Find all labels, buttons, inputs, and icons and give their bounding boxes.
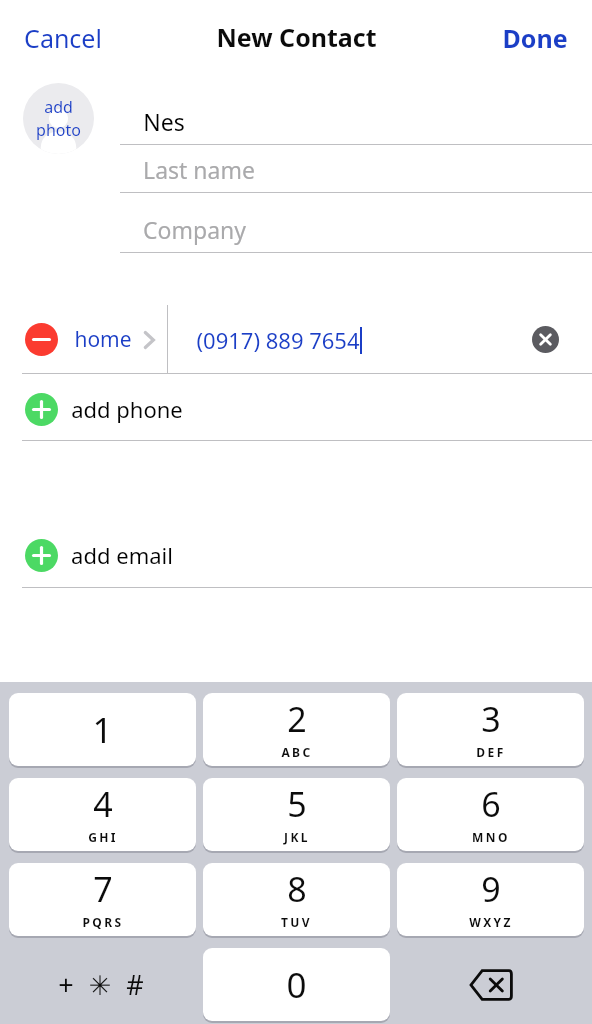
button[interactable]: 6 bbox=[397, 778, 584, 851]
staticText: Last name bbox=[143, 154, 255, 185]
button[interactable]: 9 bbox=[397, 863, 584, 936]
button[interactable]: add phone bbox=[25, 393, 58, 426]
button[interactable]: 0 bbox=[203, 948, 390, 1021]
button[interactable]: add photo bbox=[23, 83, 94, 154]
button[interactable]: add email bbox=[25, 539, 58, 572]
staticText: New Contact bbox=[216, 20, 377, 54]
button[interactable]: 5 bbox=[203, 778, 390, 851]
button[interactable]: Cancel bbox=[12, 13, 114, 63]
button[interactable]: Nes bbox=[120, 97, 592, 145]
button[interactable]: Last name bbox=[120, 145, 592, 193]
staticText: MNO bbox=[472, 829, 510, 845]
staticText: add email bbox=[71, 540, 173, 570]
button[interactable]: 8 bbox=[203, 863, 390, 936]
staticText: 2 bbox=[287, 696, 307, 742]
button[interactable]: plus star hash bbox=[9, 948, 196, 1021]
staticText: 8 bbox=[287, 866, 307, 912]
staticText: 4 bbox=[93, 781, 113, 827]
staticText: Cancel bbox=[24, 21, 102, 55]
staticText: Done bbox=[502, 21, 568, 55]
staticText: + ✳ # bbox=[58, 966, 148, 1003]
staticText: ABC bbox=[281, 744, 313, 760]
staticText: 6 bbox=[481, 781, 501, 827]
staticText: GHI bbox=[88, 829, 118, 845]
button[interactable]: 3 bbox=[397, 693, 584, 766]
button[interactable]: 2 bbox=[203, 693, 390, 766]
staticText: (0917) 889 7654 bbox=[196, 325, 360, 355]
staticText: photo bbox=[36, 119, 81, 141]
staticText: WXYZ bbox=[469, 914, 513, 930]
staticText: TUV bbox=[281, 914, 312, 930]
button[interactable]: add email bbox=[0, 524, 592, 586]
staticText: 1 bbox=[92, 706, 113, 754]
staticText: JKL bbox=[284, 829, 310, 845]
staticText: add bbox=[44, 96, 73, 118]
button[interactable]: Backspace bbox=[397, 948, 584, 1021]
staticText: 5 bbox=[287, 781, 307, 827]
button[interactable]: 1 bbox=[9, 693, 196, 766]
staticText: DEF bbox=[476, 744, 506, 760]
button[interactable]: 7 bbox=[9, 863, 196, 936]
staticText: 0 bbox=[286, 961, 307, 1009]
staticText: add phone bbox=[71, 394, 183, 424]
staticText: PQRS bbox=[82, 914, 124, 930]
staticText: 9 bbox=[481, 866, 501, 912]
staticText: 3 bbox=[481, 696, 501, 742]
button[interactable]: Done bbox=[490, 13, 580, 63]
staticText: Nes bbox=[143, 106, 185, 137]
staticText: Company bbox=[143, 214, 246, 245]
staticText: home bbox=[74, 325, 132, 354]
staticText: 7 bbox=[93, 866, 113, 912]
button[interactable]: 4 bbox=[9, 778, 196, 851]
button[interactable]: Company bbox=[120, 205, 592, 253]
button[interactable]: Clear text bbox=[532, 326, 559, 353]
button[interactable]: Remove phone bbox=[25, 323, 58, 356]
button[interactable]: Remove phone bbox=[0, 305, 592, 374]
button[interactable]: add phone bbox=[0, 378, 592, 440]
